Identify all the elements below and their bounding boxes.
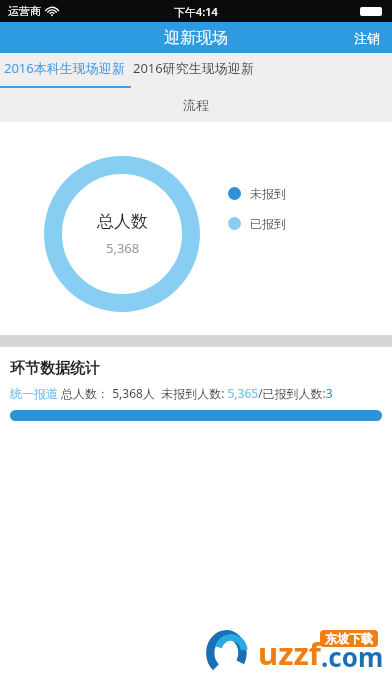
staticText: 已报到 [250,216,286,231]
button[interactable]: 已报到 [228,216,286,231]
staticText: 运营商 [8,4,41,18]
button[interactable]: 未报到 [228,186,286,201]
button[interactable]: 2016研究生现场迎新 [129,53,258,83]
staticText: 东坡下载 [325,631,373,646]
staticText: 流程 [183,97,209,113]
button[interactable]: 流程 [167,91,225,119]
staticText: 环节数据统计 [10,359,100,378]
staticText: 2016研究生现场迎新 [133,59,254,77]
staticText: 迎新现场 [164,28,228,48]
button[interactable]: 2016本科生现场迎新 [0,53,129,83]
staticText: .com [321,639,384,674]
staticText: 统一报道 总人数： 5,368人 未报到人数: 5,365/已报到人数:3 [10,385,333,401]
staticText: 总人数 [97,211,148,232]
staticText: 注销 [354,30,380,46]
staticText: 下午4:14 [174,4,218,19]
button[interactable]: 注销 [342,26,392,50]
staticText: 2016本科生现场迎新 [4,59,125,77]
staticText: 5,368 [106,239,140,257]
staticText: 未报到 [250,186,286,201]
staticText: uzzf [258,632,321,674]
